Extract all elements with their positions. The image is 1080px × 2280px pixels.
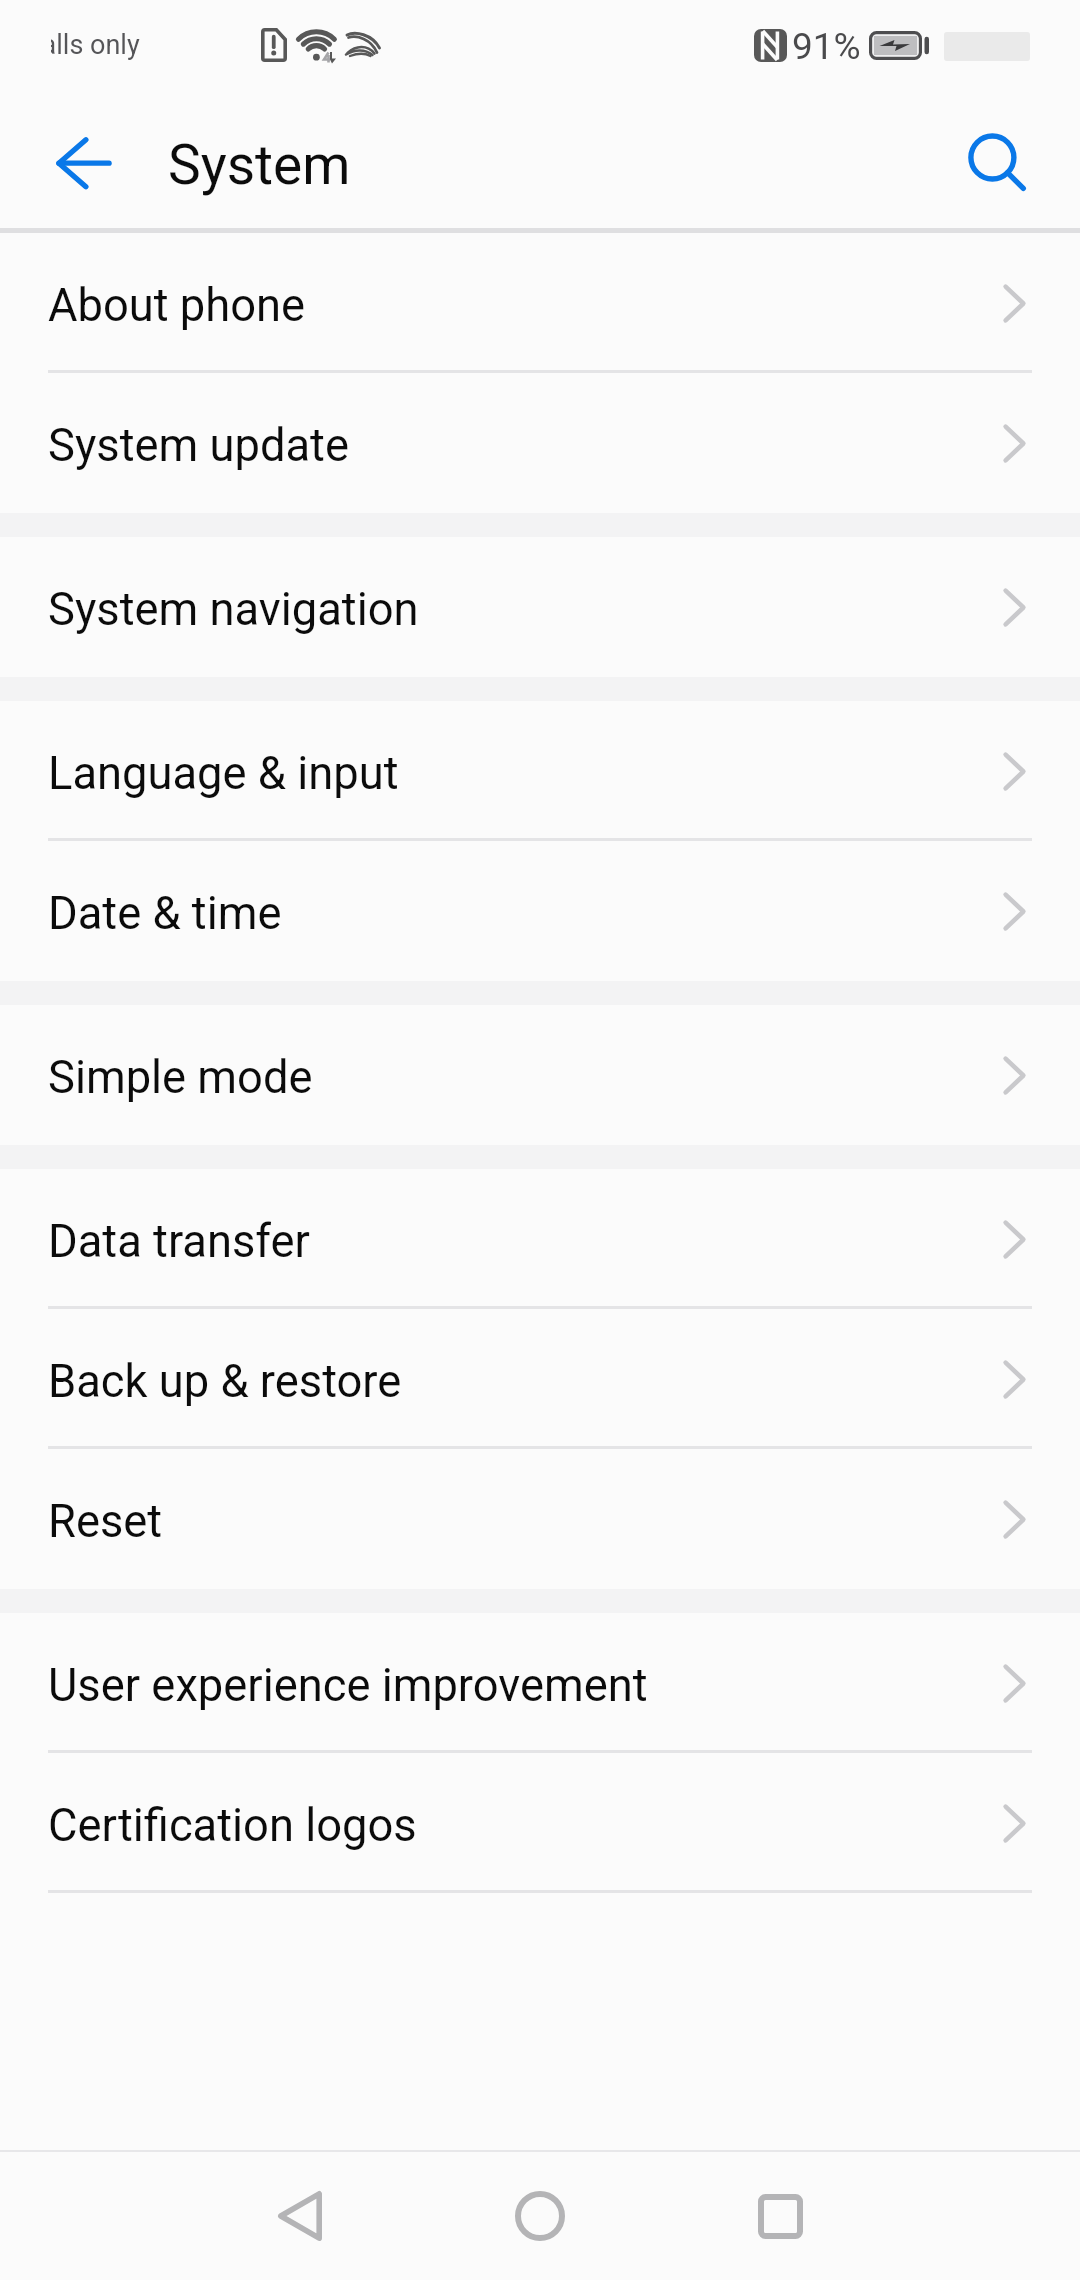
staticText: Simple mode — [48, 1051, 313, 1104]
button[interactable]: Back — [28, 108, 140, 220]
staticText: Calls only — [51, 29, 145, 61]
button[interactable]: Recents — [690, 2152, 870, 2280]
button[interactable]: Back up & restore — [0, 1309, 1080, 1449]
staticText: Language & input — [48, 747, 399, 800]
staticText: System update — [48, 419, 349, 472]
button[interactable]: Certification logos — [0, 1753, 1080, 1893]
button[interactable]: Back — [210, 2152, 390, 2280]
button[interactable]: Reset — [0, 1449, 1080, 1589]
button[interactable]: Simple mode — [0, 1005, 1080, 1145]
staticText: Reset — [48, 1495, 163, 1548]
button[interactable]: Search — [942, 108, 1054, 220]
staticText: Certification logos — [48, 1799, 417, 1852]
button[interactable]: Date & time — [0, 841, 1080, 981]
staticText: 91% — [792, 25, 861, 68]
button[interactable]: Home — [450, 2152, 630, 2280]
button[interactable]: Language & input — [0, 701, 1080, 841]
button[interactable]: System update — [0, 373, 1080, 513]
staticText: User experience improvement — [48, 1659, 648, 1712]
button[interactable]: Data transfer — [0, 1169, 1080, 1309]
staticText: Back up & restore — [48, 1355, 402, 1408]
staticText: Data transfer — [48, 1215, 310, 1268]
staticText: System — [168, 133, 351, 197]
staticText: System navigation — [48, 583, 419, 636]
button[interactable]: About phone — [0, 233, 1080, 373]
staticText: About phone — [48, 279, 306, 332]
staticText: Date & time — [48, 887, 282, 940]
button[interactable]: System navigation — [0, 537, 1080, 677]
button[interactable]: User experience improvement — [0, 1613, 1080, 1753]
